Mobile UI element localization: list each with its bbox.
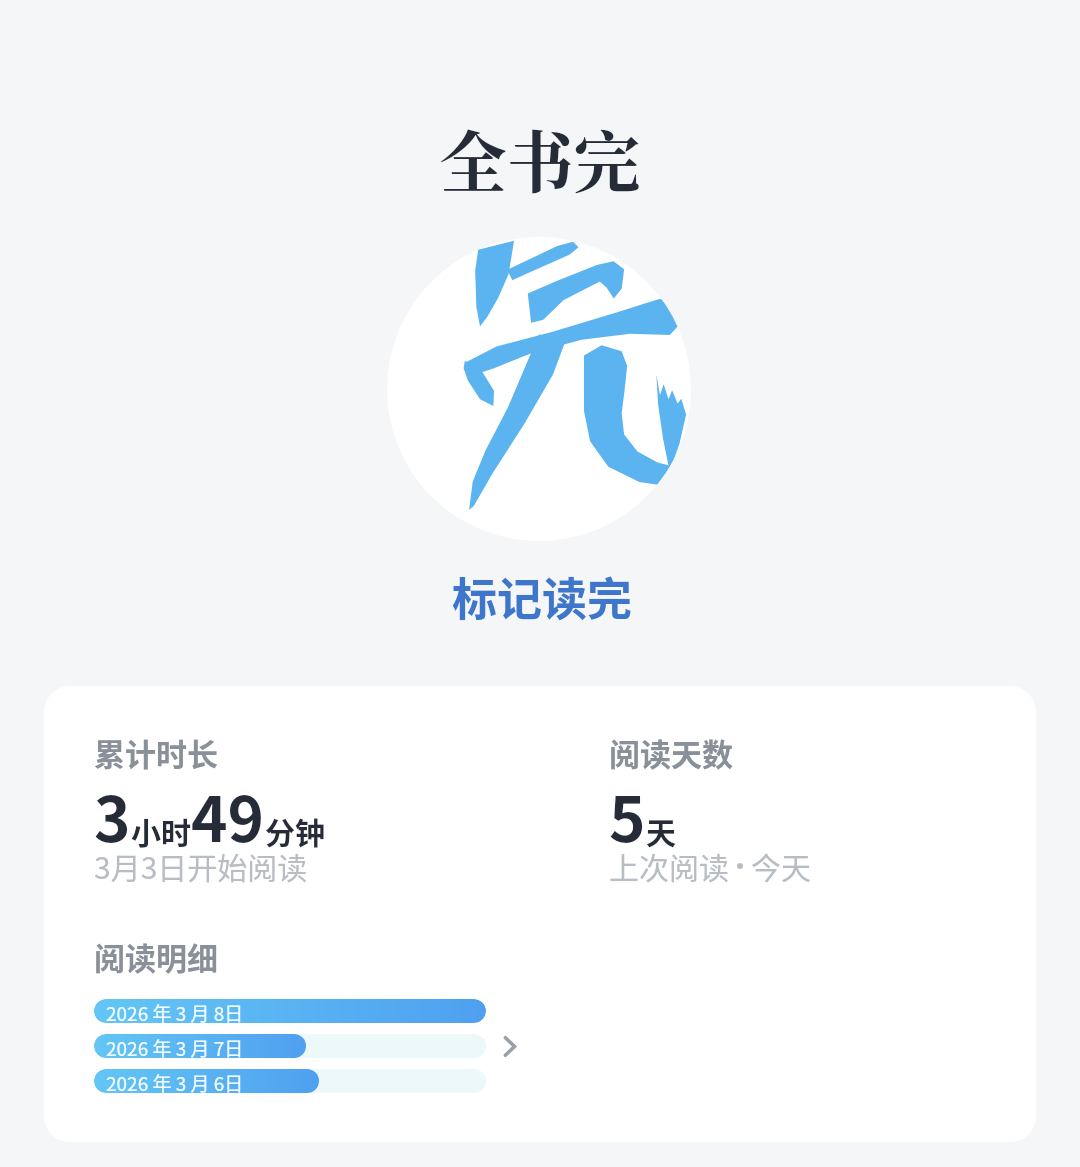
staticText: 今天: [751, 844, 811, 887]
button[interactable]: 完 Finished book seal: [387, 237, 691, 541]
staticText: 累计时长: [94, 730, 218, 775]
staticText: 阅读明细: [94, 934, 218, 979]
staticText: 3月3日开始阅读: [94, 844, 308, 887]
staticText: 标记读完: [452, 564, 633, 629]
staticText: 2026 年 3 月 8日: [106, 999, 244, 1023]
staticText: 2026 年 3 月 6日: [106, 1069, 244, 1093]
staticText: 49: [191, 770, 265, 860]
staticText: 上次阅读: [609, 844, 729, 887]
staticText: 阅读天数: [609, 730, 733, 775]
staticText: 小时: [131, 809, 191, 852]
staticText: 5: [609, 770, 646, 860]
staticText: 3: [94, 770, 131, 860]
staticText: 天: [646, 809, 676, 852]
button[interactable]: 2026 年 3 月 8日: [94, 999, 521, 1093]
other: More details: [498, 1035, 521, 1058]
staticText: 全书完: [0, 110, 1080, 206]
button[interactable]: 标记读完: [422, 552, 663, 641]
staticText: 分钟: [265, 809, 325, 852]
staticText: 2026 年 3 月 7日: [106, 1034, 244, 1058]
